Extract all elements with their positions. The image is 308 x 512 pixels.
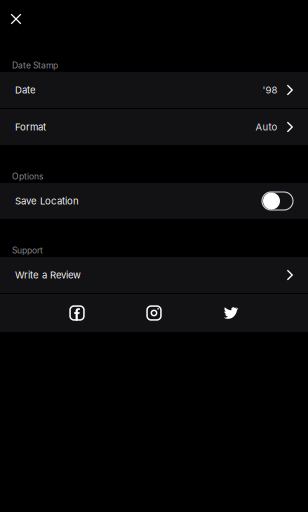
staticText: Date Stamp [12,60,58,70]
button[interactable]: Twitter [192,294,269,332]
button[interactable]: Facebook [38,294,115,332]
staticText: Date [15,84,36,96]
staticText: Save Location [15,195,79,207]
staticText: Format [15,121,46,133]
button[interactable]: Date [0,72,308,108]
staticText: Support [12,245,43,255]
staticText: Auto [256,121,278,133]
staticText: Write a Review [15,269,81,281]
button[interactable]: Format [0,109,308,145]
button[interactable]: Close [0,2,32,35]
staticText: '98 [263,84,278,96]
staticText: Options [12,171,44,181]
button[interactable]: Save Location [0,183,308,219]
button[interactable]: Instagram [115,294,192,332]
button[interactable]: Write a Review [0,257,308,293]
